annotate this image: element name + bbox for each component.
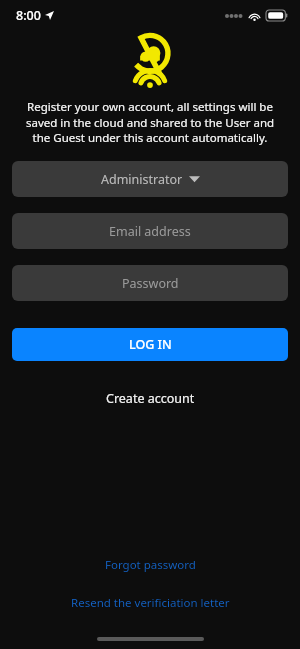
button[interactable]: Administrator	[12, 161, 288, 197]
staticText: LOG IN	[129, 336, 172, 353]
other: Smart bulb cloud logo	[124, 34, 176, 90]
staticText: Email address	[109, 223, 191, 240]
staticText: 8:00	[16, 7, 41, 24]
button[interactable]: Resend the verificiation letter	[61, 591, 240, 615]
staticText: Forgot password	[105, 557, 196, 573]
button[interactable]: Email address	[12, 213, 288, 249]
button[interactable]: Forgot password	[95, 553, 206, 577]
staticText: Administrator	[101, 171, 183, 188]
staticText: Password	[122, 275, 179, 292]
staticText: Resend the verificiation letter	[71, 595, 230, 611]
button[interactable]: Create account	[96, 386, 205, 411]
staticText: Create account	[106, 390, 195, 407]
button[interactable]: Password	[12, 265, 288, 301]
staticText: Register your own account, all settings …	[17, 99, 283, 145]
button[interactable]: LOG IN	[12, 328, 288, 361]
